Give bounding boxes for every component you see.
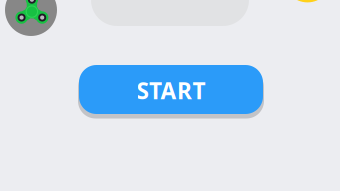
staticText: START (136, 75, 205, 105)
button[interactable]: START (79, 65, 263, 114)
